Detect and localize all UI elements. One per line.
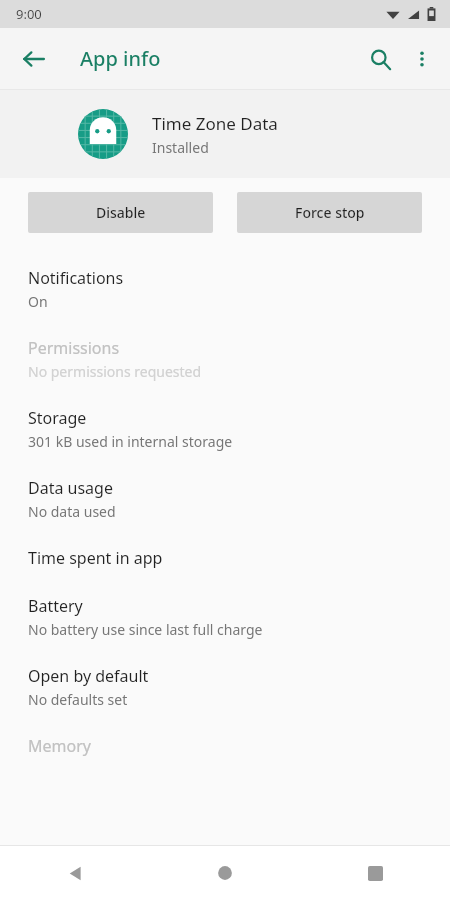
staticText: Permissions [28, 337, 120, 359]
staticText: No permissions requested [28, 362, 202, 381]
button[interactable]: Memory [0, 722, 450, 770]
button[interactable]: Time spent in app [0, 534, 450, 582]
staticText: Memory [28, 735, 91, 757]
staticText: Force stop [295, 203, 365, 222]
button[interactable]: Data usage [0, 464, 450, 534]
staticText: App info [80, 45, 161, 72]
staticText: Storage [28, 407, 87, 429]
staticText: 9:00 [16, 5, 42, 23]
button[interactable]: Battery [0, 582, 450, 652]
staticText: Time Zone Data [152, 112, 278, 135]
button[interactable]: Notifications [0, 254, 450, 324]
staticText: Battery [28, 595, 83, 617]
staticText: 301 kB used in internal storage [28, 432, 233, 451]
button[interactable]: Time Zone Data [0, 90, 450, 178]
button[interactable]: More options [402, 39, 442, 79]
staticText: Time spent in app [28, 547, 163, 569]
staticText: No battery use since last full charge [28, 620, 263, 639]
button[interactable]: Permissions [0, 324, 450, 394]
staticText: No data used [28, 502, 116, 521]
button[interactable]: Home [150, 846, 300, 900]
staticText: On [28, 292, 48, 311]
staticText: Data usage [28, 477, 113, 499]
staticText: Notifications [28, 267, 124, 289]
staticText: Installed [152, 138, 209, 157]
button[interactable]: Disable [28, 192, 213, 233]
button[interactable]: Search [358, 37, 402, 81]
button[interactable]: Back [14, 39, 54, 79]
staticText: Disable [96, 203, 146, 222]
button[interactable]: Back [0, 846, 150, 900]
button[interactable]: Recent apps [300, 846, 450, 900]
staticText: Open by default [28, 665, 149, 687]
button[interactable]: Force stop [237, 192, 422, 233]
button[interactable]: Open by default [0, 652, 450, 722]
button[interactable]: Storage [0, 394, 450, 464]
staticText: No defaults set [28, 690, 128, 709]
